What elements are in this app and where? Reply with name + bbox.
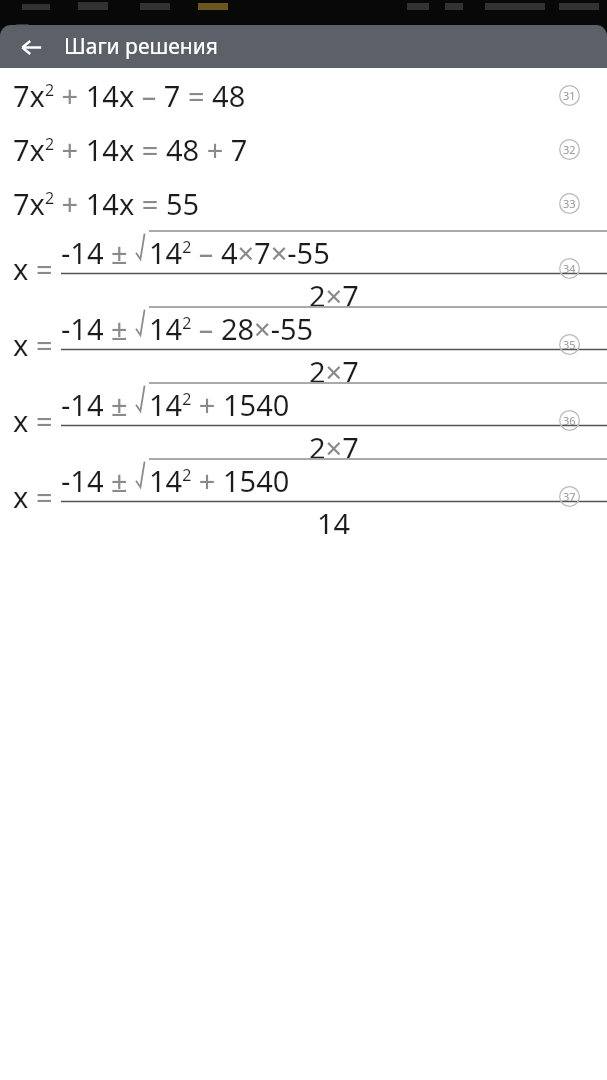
button[interactable]: 7x2 + 14x = 48 + 7 — [0, 122, 607, 176]
staticText: 7x2 + 14x = 55 — [13, 184, 200, 223]
button[interactable]: x = — [0, 306, 607, 382]
staticText: 142 – 28×-55 — [149, 309, 314, 348]
staticText: 7x2 + 14x = 48 + 7 — [13, 130, 248, 169]
staticText: 7x2 + 14x – 7 = 48 — [13, 76, 246, 115]
staticText: 34 — [563, 261, 576, 276]
staticText: Сохранение... — [45, 22, 145, 42]
staticText: 14 — [317, 504, 351, 534]
staticText: 31 — [563, 88, 576, 103]
staticText: 37 — [563, 489, 576, 504]
staticText: -14 ± — [61, 461, 136, 500]
staticText: 2×7 — [309, 276, 359, 306]
staticText: 32 — [563, 142, 576, 157]
staticText: 35 — [563, 337, 576, 352]
button[interactable]: x = — [0, 230, 607, 306]
staticText: 142 + 1540 — [149, 461, 290, 500]
staticText: 36 — [563, 413, 576, 428]
button[interactable]: 7x2 + 14x – 7 = 48 — [0, 68, 607, 122]
staticText: x = — [13, 325, 53, 364]
staticText: Шаги решения — [64, 32, 218, 61]
staticText: 33 — [563, 196, 576, 211]
button[interactable]: x = — [0, 382, 607, 458]
staticText: x = — [13, 249, 53, 288]
staticText: 2×7 — [309, 428, 359, 458]
staticText: 142 + 1540 — [149, 385, 290, 424]
staticText: 142 – 4×7×-55 — [149, 233, 330, 272]
staticText: x = — [13, 477, 53, 516]
button[interactable]: 7x2 + 14x = 55 — [0, 176, 607, 230]
staticText: x = — [13, 401, 53, 440]
button[interactable]: x = — [0, 458, 607, 534]
button[interactable]: Back — [10, 26, 52, 68]
staticText: 2×7 — [309, 352, 359, 382]
staticText: -14 ± — [61, 385, 136, 424]
staticText: -14 ± — [61, 233, 136, 272]
staticText: -14 ± — [61, 309, 136, 348]
